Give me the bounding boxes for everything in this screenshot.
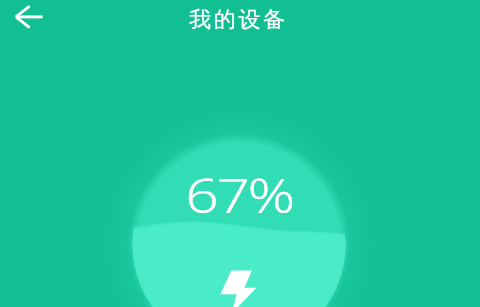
- staticText: 67%: [185, 163, 293, 227]
- button[interactable]: Back: [6, 0, 40, 34]
- staticText: 我的设备: [189, 6, 288, 34]
